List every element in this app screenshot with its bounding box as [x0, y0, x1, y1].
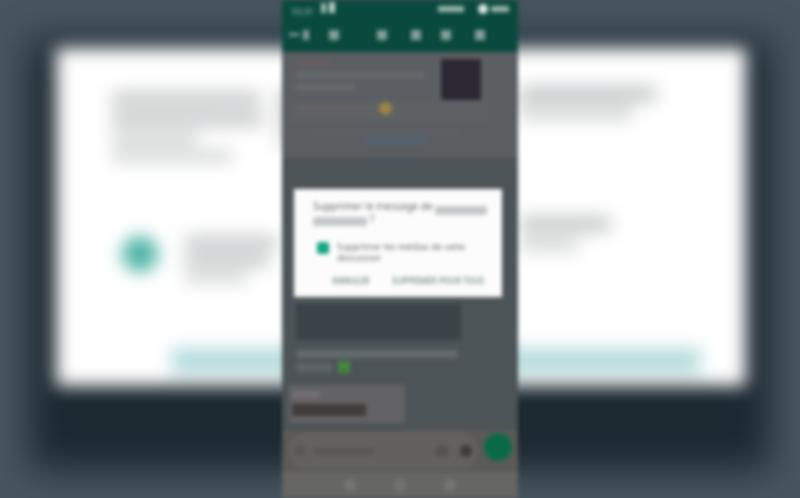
button[interactable]: ANNULER	[332, 275, 370, 286]
button[interactable]: SUPPRIMER POUR TOUS	[392, 275, 484, 286]
staticText: ?	[370, 212, 375, 226]
staticText: 10:31	[291, 5, 315, 17]
button[interactable]: Reply	[327, 28, 341, 42]
button[interactable]: Back	[344, 479, 356, 491]
staticText: Supprimer le message de	[313, 199, 433, 213]
button[interactable]	[288, 433, 478, 469]
button[interactable]: Back	[289, 29, 311, 42]
staticText: SUPPRIMER POUR TOUS	[392, 275, 484, 286]
button[interactable]: Delete	[409, 28, 423, 42]
button[interactable]: More	[473, 28, 487, 42]
staticText: ANNULER	[332, 275, 370, 286]
button[interactable]: Star	[375, 28, 389, 42]
button[interactable]: Supprimer les médias de cette discussion	[317, 240, 466, 263]
button[interactable]: Copy	[439, 28, 453, 42]
staticText: Supprimer les médias de cette discussion	[337, 240, 466, 263]
button[interactable]: Home	[394, 479, 406, 491]
button[interactable]: Record voice message	[484, 433, 512, 461]
button[interactable]: Recents	[444, 479, 456, 491]
